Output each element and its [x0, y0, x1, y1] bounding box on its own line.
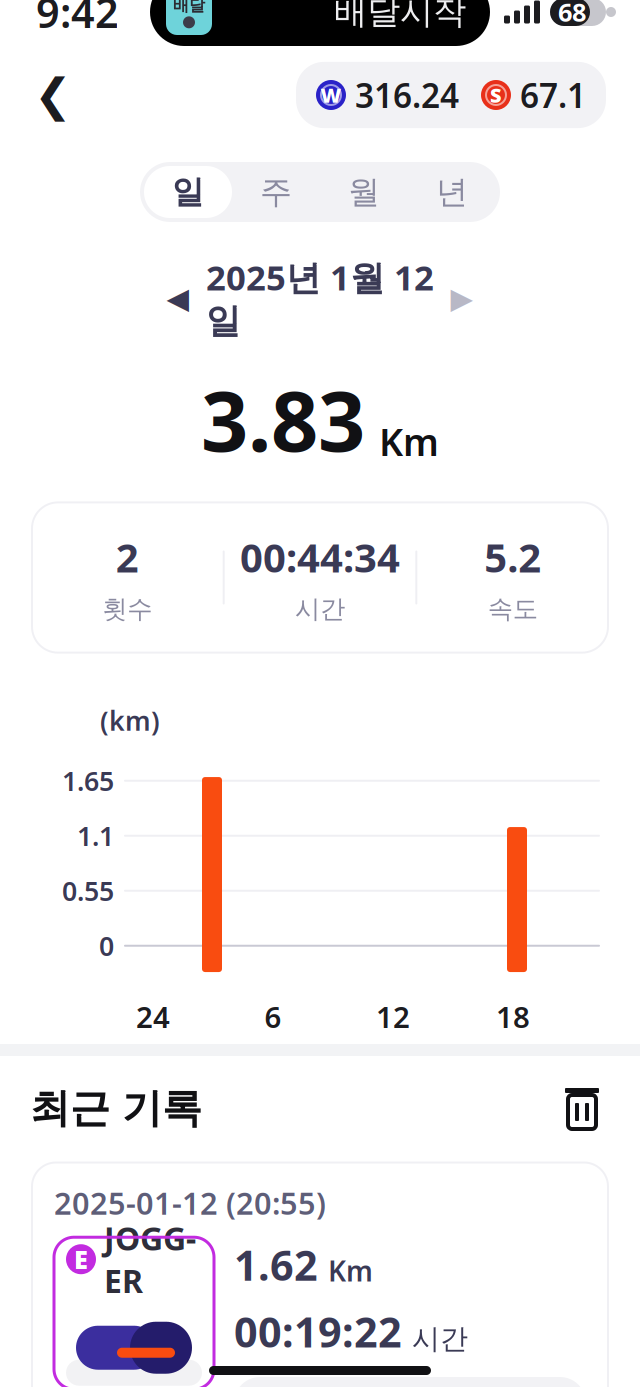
staticText: 최근 기록: [30, 1084, 202, 1133]
button[interactable]: 주: [232, 166, 320, 218]
staticText: 1.62: [234, 1237, 318, 1292]
staticText: 배달: [173, 0, 205, 15]
button[interactable]: Next day: [435, 275, 489, 321]
staticText: 00:19:22: [234, 1304, 402, 1359]
staticText: 2025년 1월 12일: [206, 254, 434, 343]
staticText: 시간: [295, 593, 345, 625]
staticText: 2025-01-12 (20:55): [54, 1182, 326, 1223]
staticText: 일: [172, 172, 204, 212]
staticText: 횟수: [102, 593, 152, 625]
button[interactable]: Wallet balance: [296, 62, 606, 128]
staticText: 18: [496, 997, 530, 1036]
staticText: 68: [558, 0, 586, 29]
staticText: 2: [116, 530, 139, 583]
staticText: 67.1: [520, 73, 586, 117]
staticText: 0.55: [62, 873, 114, 908]
button[interactable]: Delete records: [552, 1078, 612, 1138]
staticText: 12: [376, 997, 410, 1036]
staticText: 00:44:34: [240, 530, 400, 583]
staticText: 월: [348, 172, 380, 212]
staticText: 6: [264, 997, 281, 1036]
staticText: 316.24: [355, 73, 459, 117]
staticText: Km: [379, 417, 439, 466]
staticText: 주: [260, 172, 292, 212]
staticText: 속도: [488, 593, 538, 625]
staticText: 3.83: [201, 365, 365, 474]
staticText: ◀: [166, 282, 189, 315]
staticText: (km): [100, 703, 160, 738]
staticText: 1.1: [77, 818, 114, 853]
staticText: S: [490, 82, 502, 108]
button[interactable]: 일: [144, 166, 232, 218]
staticText: 5.2: [484, 530, 541, 583]
staticText: Km: [328, 1252, 373, 1289]
staticText: 24: [136, 997, 170, 1036]
button[interactable]: 월: [320, 166, 408, 218]
staticText: 년: [436, 172, 468, 212]
staticText: JOGGER: [104, 1217, 196, 1302]
staticText: 1.65: [62, 763, 114, 798]
staticText: ❮: [34, 69, 72, 121]
staticText: 시간: [412, 1322, 468, 1356]
staticText: ▶: [450, 282, 473, 315]
button[interactable]: Previous day: [151, 275, 205, 321]
staticText: 배달시작: [334, 0, 466, 32]
button[interactable]: 년: [408, 166, 496, 218]
staticText: 0: [99, 928, 114, 963]
button[interactable]: 2025-01-12 (20:55): [32, 1162, 608, 1387]
staticText: 9:42: [36, 0, 119, 39]
button[interactable]: Back: [24, 66, 82, 124]
staticText: E: [74, 1242, 88, 1276]
staticText: W: [320, 82, 341, 108]
